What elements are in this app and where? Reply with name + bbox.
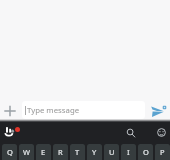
staticText: O [143, 147, 149, 157]
staticText: P [160, 147, 165, 157]
staticText: T [75, 147, 80, 157]
button[interactable]: Q [2, 144, 17, 160]
staticText: I [127, 147, 130, 157]
staticText: Y [92, 147, 97, 157]
staticText: U [109, 147, 115, 157]
staticText: Q [7, 147, 13, 157]
staticText: R [58, 147, 63, 157]
staticText: W [23, 147, 30, 157]
button[interactable]: U [104, 144, 119, 160]
button[interactable]: Add attachment [0, 100, 20, 121]
button[interactable]: Search [120, 122, 141, 143]
button[interactable]: P [155, 144, 170, 160]
button[interactable]: Emoji [151, 122, 170, 143]
staticText: E [41, 147, 46, 157]
button[interactable]: Send [146, 97, 170, 121]
button[interactable]: O [138, 144, 153, 160]
button[interactable]: I [121, 144, 136, 160]
button[interactable]: T [70, 144, 85, 160]
button[interactable]: Gboard settings [0, 122, 19, 141]
staticText: Type message [27, 105, 80, 116]
button[interactable]: R [53, 144, 68, 160]
button[interactable]: E [36, 144, 51, 160]
button[interactable]: W [19, 144, 34, 160]
button[interactable]: Type message [22, 101, 145, 119]
button[interactable]: Y [87, 144, 102, 160]
